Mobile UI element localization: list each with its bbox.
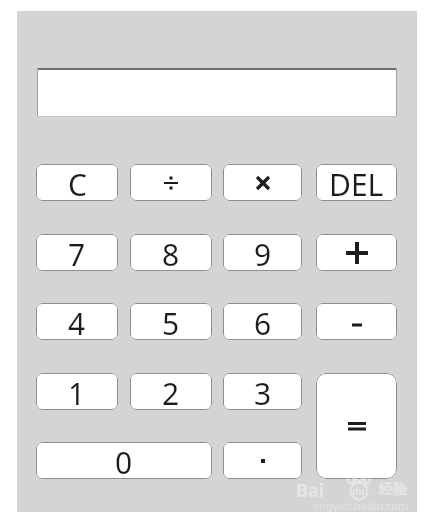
button[interactable] [130,164,212,201]
staticText: DEL [329,164,384,201]
staticText: 7 [68,234,86,271]
button[interactable]: C [36,164,118,201]
staticText: jingyan.baidu.com [313,498,409,513]
staticText: du [352,484,365,498]
staticText: 2 [162,373,180,410]
button[interactable]: 7 [36,234,118,271]
button[interactable]: 2 [130,373,212,410]
button[interactable]: 6 [223,303,302,340]
button[interactable]: 5 [130,303,212,340]
button[interactable] [316,303,397,340]
button[interactable] [316,234,397,271]
staticText: 5 [162,303,180,340]
button[interactable]: 1 [36,373,118,410]
staticText: 3 [254,373,272,410]
button[interactable]: 3 [223,373,302,410]
button[interactable] [37,68,397,117]
staticText: 4 [68,303,86,340]
button[interactable]: 8 [130,234,212,271]
staticText: 经验 [379,481,407,499]
staticText: 0 [115,442,133,479]
staticText: 9 [254,234,272,271]
button[interactable] [223,442,302,479]
button[interactable]: DEL [316,164,397,201]
button[interactable]: 9 [223,234,302,271]
staticText: 1 [68,373,86,410]
staticText: 6 [254,303,272,340]
button[interactable] [223,164,302,201]
button[interactable]: 4 [36,303,118,340]
button[interactable] [316,373,397,479]
staticText: Bai [296,478,325,503]
button[interactable]: 0 [36,442,212,479]
staticText: C [68,164,87,201]
staticText: 8 [162,234,180,271]
